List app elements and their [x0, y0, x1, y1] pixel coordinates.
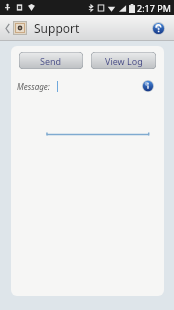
button[interactable]: Send: [19, 52, 83, 69]
staticText: Support: [34, 20, 80, 36]
staticText: Message:: [17, 81, 50, 92]
button[interactable]: View Log: [91, 52, 156, 69]
staticText: Send: [40, 55, 62, 67]
staticText: 2:17 PM: [137, 2, 171, 14]
button[interactable]: Information: [140, 78, 156, 94]
button[interactable]: Navigate up: [3, 21, 29, 35]
staticText: View Log: [105, 55, 143, 67]
button[interactable]: Help: [148, 18, 168, 38]
